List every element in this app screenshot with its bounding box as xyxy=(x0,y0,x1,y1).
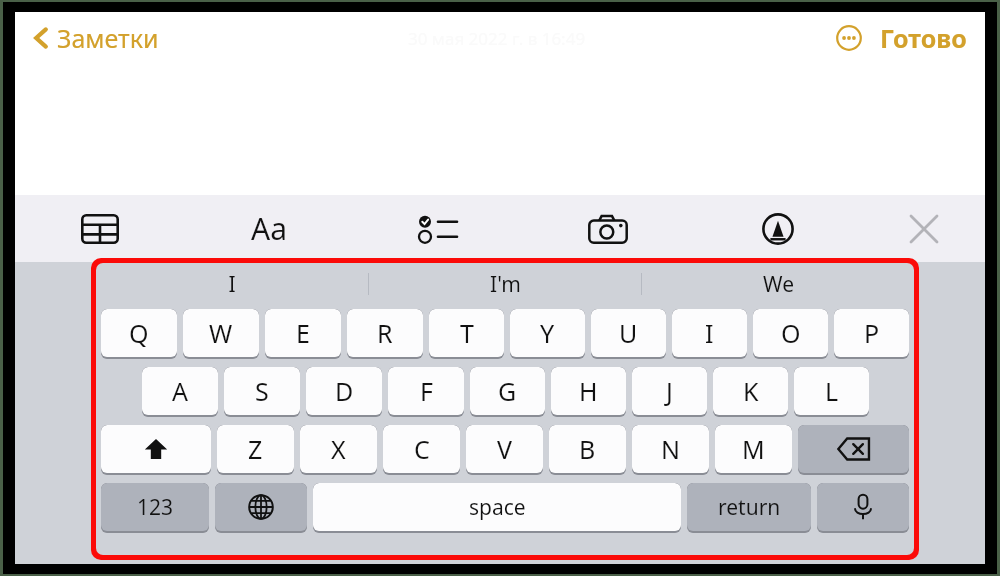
button[interactable]: V xyxy=(466,425,543,473)
button[interactable]: I xyxy=(96,263,368,305)
staticText: C xyxy=(414,432,430,466)
button[interactable]: L xyxy=(794,367,869,415)
button[interactable]: Дополнительно xyxy=(832,21,866,55)
staticText: 123 xyxy=(137,493,174,522)
button[interactable]: return xyxy=(687,483,811,531)
staticText: Q xyxy=(129,316,149,350)
button[interactable]: Разметка xyxy=(693,195,863,262)
button[interactable] xyxy=(798,425,909,473)
button[interactable]: B xyxy=(549,425,626,473)
staticText: We xyxy=(763,270,794,299)
button[interactable]: R xyxy=(347,309,423,357)
button[interactable]: M xyxy=(715,425,792,473)
button[interactable]: 123 xyxy=(101,483,209,531)
staticText: Z xyxy=(248,432,263,466)
button[interactable]: T xyxy=(429,309,504,357)
staticText: W xyxy=(209,316,233,350)
button[interactable] xyxy=(101,425,211,473)
staticText: H xyxy=(579,374,598,408)
staticText: L xyxy=(825,374,839,408)
button[interactable]: A xyxy=(142,367,218,415)
other: Сменить язык xyxy=(215,483,307,533)
button[interactable]: We xyxy=(642,263,914,305)
staticText: Готово xyxy=(880,21,967,55)
button[interactable]: Готово xyxy=(876,17,971,59)
button[interactable] xyxy=(215,483,307,531)
button[interactable]: Камера xyxy=(523,195,693,262)
button[interactable]: K xyxy=(713,367,788,415)
staticText: I'm xyxy=(490,270,521,299)
staticText: S xyxy=(255,374,269,408)
button[interactable]: space xyxy=(313,483,681,531)
button[interactable]: Q xyxy=(101,309,177,357)
staticText: B xyxy=(579,432,596,466)
button[interactable]: D xyxy=(306,367,382,415)
button[interactable]: X xyxy=(300,425,377,473)
staticText: P xyxy=(864,316,880,350)
button[interactable]: U xyxy=(591,309,666,357)
button[interactable]: Y xyxy=(510,309,585,357)
other: Backspace xyxy=(798,425,909,475)
staticText: G xyxy=(498,374,517,408)
staticText: N xyxy=(661,432,681,466)
button[interactable]: Заметки xyxy=(29,17,163,59)
button[interactable] xyxy=(817,483,909,531)
button[interactable]: Таблица xyxy=(15,195,184,262)
button[interactable]: O xyxy=(753,309,828,357)
button[interactable]: W xyxy=(183,309,259,357)
staticText: K xyxy=(743,374,759,408)
button[interactable]: P xyxy=(834,309,909,357)
other: Shift xyxy=(101,425,211,475)
staticText: I xyxy=(705,316,714,350)
staticText: U xyxy=(619,316,638,350)
staticText: return xyxy=(718,493,781,522)
button[interactable]: G xyxy=(470,367,545,415)
button[interactable]: F xyxy=(388,367,464,415)
button[interactable]: H xyxy=(551,367,626,415)
staticText: Заметки xyxy=(57,21,159,55)
button[interactable]: Список xyxy=(353,195,523,262)
staticText: M xyxy=(742,432,765,466)
button[interactable]: J xyxy=(632,367,707,415)
button[interactable]: I xyxy=(672,309,747,357)
staticText: I xyxy=(228,270,236,299)
button[interactable]: E xyxy=(265,309,341,357)
button[interactable]: S xyxy=(224,367,300,415)
staticText: J xyxy=(666,374,673,408)
button[interactable]: I'm xyxy=(369,263,641,305)
staticText: D xyxy=(335,374,354,408)
button[interactable]: N xyxy=(632,425,709,473)
staticText: E xyxy=(296,316,310,350)
staticText: T xyxy=(460,316,474,350)
button[interactable]: Формат текста xyxy=(184,195,353,262)
staticText: Y xyxy=(540,316,555,350)
staticText: Aa xyxy=(251,208,287,249)
button[interactable]: Закрыть xyxy=(863,195,985,262)
button[interactable]: C xyxy=(383,425,460,473)
other: Диктовка xyxy=(817,483,909,533)
staticText: F xyxy=(420,374,433,408)
button[interactable]: Z xyxy=(217,425,294,473)
staticText: V xyxy=(497,432,513,466)
staticText: X xyxy=(331,432,346,466)
staticText: R xyxy=(377,316,393,350)
staticText: O xyxy=(781,316,801,350)
staticText: space xyxy=(469,493,526,522)
staticText: A xyxy=(172,374,188,408)
